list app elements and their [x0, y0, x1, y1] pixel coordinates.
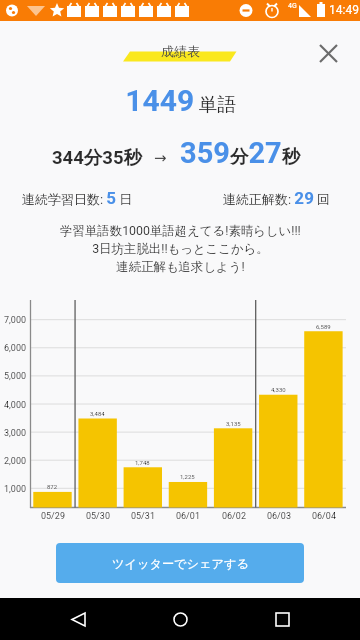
- staticText: 1,748: [135, 459, 150, 466]
- staticText: 4,000: [3, 400, 26, 411]
- staticText: 06/04: [312, 511, 336, 522]
- staticText: 06/03: [267, 511, 291, 522]
- staticText: 359分27秒: [180, 136, 301, 170]
- staticText: 連続学習日数: 5 日: [22, 188, 133, 208]
- button[interactable]: ツイッターでシェアする: [56, 543, 304, 583]
- button[interactable]: Close: [312, 37, 344, 69]
- staticText: 6,000: [3, 343, 26, 354]
- staticText: 2,000: [3, 456, 26, 467]
- staticText: 05/31: [131, 511, 155, 522]
- staticText: ツイッターでシェアする: [112, 556, 249, 571]
- staticText: 1,000: [3, 484, 26, 495]
- staticText: 学習単語数1000単語超えてる!素晴らしい!!! 3日坊主脱出!!もっとここから…: [60, 223, 301, 274]
- staticText: 05/30: [86, 511, 110, 522]
- button[interactable]: Recents: [258, 598, 306, 640]
- button[interactable]: Back: [54, 598, 102, 640]
- button[interactable]: Home: [156, 598, 204, 640]
- staticText: 06/02: [222, 511, 246, 522]
- staticText: 3,000: [3, 428, 26, 439]
- staticText: 06/01: [176, 511, 200, 522]
- staticText: 1,225: [180, 473, 195, 480]
- staticText: 3,135: [226, 420, 241, 427]
- staticText: 4,330: [271, 386, 286, 393]
- staticText: 5,000: [3, 371, 26, 382]
- staticText: 7,000: [3, 315, 26, 326]
- staticText: 05/29: [41, 511, 65, 522]
- staticText: →: [154, 149, 167, 166]
- staticText: 344分35秒: [52, 146, 143, 169]
- staticText: 成績表: [161, 43, 200, 59]
- staticText: 3,484: [90, 410, 105, 417]
- staticText: 連続正解数: 29 回: [223, 188, 331, 208]
- staticText: 14:49: [329, 3, 359, 17]
- staticText: 1449 単語: [125, 83, 236, 118]
- staticText: 872: [47, 483, 58, 490]
- staticText: 6,589: [316, 323, 331, 330]
- staticText: 4G: [288, 2, 297, 10]
